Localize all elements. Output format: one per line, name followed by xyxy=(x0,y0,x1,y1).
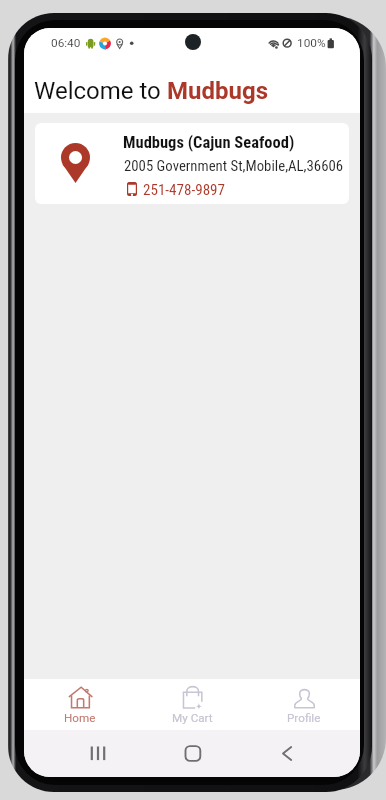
button[interactable]: Mudbugs (Cajun Seafood) xyxy=(35,123,349,204)
staticText: Home xyxy=(64,711,96,725)
staticText: Profile xyxy=(287,711,321,725)
button[interactable]: Home xyxy=(24,679,136,730)
button[interactable]: Recent apps xyxy=(56,730,168,777)
staticText: Welcome to xyxy=(34,77,167,105)
staticText: 251-478-9897 xyxy=(143,181,225,199)
staticText: 06:40 xyxy=(51,36,81,50)
staticText: Mudbugs (Cajun Seafood) xyxy=(123,133,295,152)
staticText: 100% xyxy=(297,36,326,50)
staticText: Mudbugs xyxy=(167,77,269,105)
button[interactable]: My Cart xyxy=(136,679,248,730)
button[interactable]: Back xyxy=(258,730,348,777)
staticText: 2005 Government St,Mobile,AL,36606 xyxy=(124,157,344,174)
button[interactable]: Home xyxy=(168,730,258,777)
staticText: My Cart xyxy=(172,711,213,725)
button[interactable]: Profile xyxy=(248,679,360,730)
